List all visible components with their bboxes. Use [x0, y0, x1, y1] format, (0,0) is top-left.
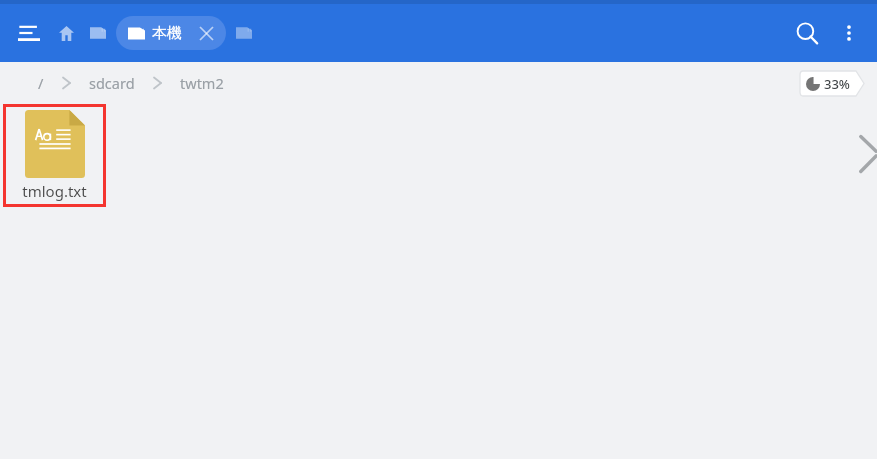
button[interactable]: Storage usage 33 percent [799, 70, 865, 97]
button[interactable]: Storage tab [84, 19, 112, 47]
staticText: / [38, 73, 44, 93]
staticText: 33% [824, 75, 850, 93]
button[interactable]: Search [785, 11, 829, 55]
button[interactable]: Home [52, 19, 80, 47]
button[interactable]: twtm2 [172, 69, 232, 97]
button[interactable]: More options [829, 13, 869, 53]
button[interactable]: Menu [9, 13, 49, 53]
button[interactable]: sdcard [81, 69, 143, 97]
button[interactable]: 本機 [116, 16, 226, 50]
button[interactable]: tmlog.txt [3, 104, 106, 207]
other: Panel handle [859, 132, 877, 178]
button[interactable]: / [30, 69, 52, 97]
button[interactable]: Storage tab 2 [230, 19, 258, 47]
staticText: 本機 [152, 24, 182, 43]
staticText: tmlog.txt [22, 181, 87, 201]
staticText: sdcard [89, 73, 135, 93]
button[interactable]: Close tab [194, 21, 218, 45]
staticText: twtm2 [180, 73, 224, 93]
